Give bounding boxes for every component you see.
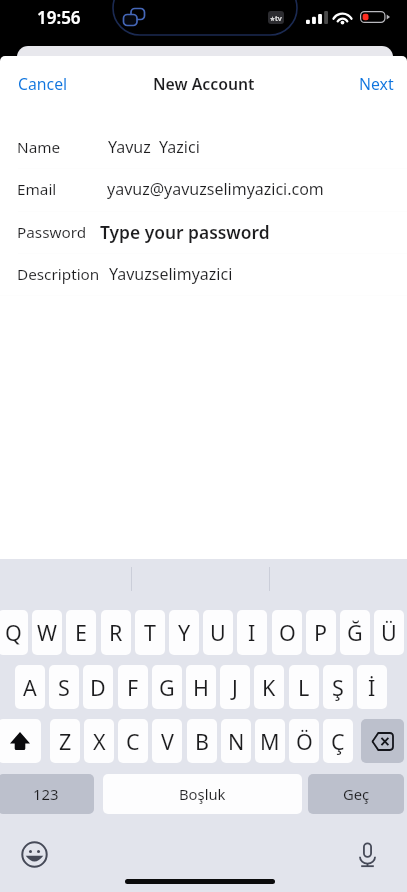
staticText: Yavuzselimyazici [109, 263, 233, 285]
button[interactable]: T [135, 610, 165, 655]
button[interactable]: A [15, 665, 45, 709]
button[interactable]: Description [0, 253, 407, 295]
staticText: G [159, 673, 175, 702]
staticText: Ö [296, 727, 313, 756]
button[interactable]: S [49, 665, 79, 709]
staticText: A [23, 673, 37, 702]
button[interactable]: İ [357, 665, 387, 709]
button[interactable]: Backspace [361, 719, 404, 763]
button[interactable]: Email [0, 168, 407, 210]
button[interactable]: Name [0, 126, 407, 168]
staticText: Name [17, 137, 61, 158]
staticText: E [75, 618, 87, 647]
staticText: J [232, 673, 238, 702]
button[interactable]: B [187, 719, 217, 763]
button[interactable]: J [220, 665, 250, 709]
button[interactable]: Y [169, 610, 199, 655]
staticText: Description [17, 264, 100, 285]
staticText: U [210, 618, 226, 647]
button[interactable]: E [66, 610, 96, 655]
staticText: Yavuz Yazici [108, 136, 200, 158]
staticText: L [298, 673, 310, 702]
staticText: Email [17, 179, 57, 200]
staticText: yavuz@yavuzselimyazici.com [107, 178, 324, 200]
button[interactable]: N [221, 719, 251, 763]
button[interactable]: V [152, 719, 182, 763]
button[interactable]: Ç [323, 719, 353, 763]
button[interactable]: H [186, 665, 216, 709]
staticText: F [127, 673, 139, 702]
button[interactable]: I [237, 610, 267, 655]
button[interactable]: D [83, 665, 113, 709]
staticText: Ç [331, 727, 345, 756]
button[interactable]: L [289, 665, 319, 709]
staticText: tv [270, 13, 282, 23]
staticText: Type your password [100, 220, 270, 244]
button[interactable]: Cancel [5, 67, 81, 101]
staticText: Boşluk [179, 784, 226, 804]
button[interactable]: X [84, 719, 114, 763]
staticText: Z [59, 727, 72, 756]
staticText: 123 [33, 784, 59, 804]
staticText: B [195, 727, 209, 756]
staticText: X [93, 727, 106, 756]
button[interactable]: P [306, 610, 336, 655]
staticText: P [314, 618, 328, 647]
staticText: Q [5, 618, 22, 647]
staticText: S [58, 673, 70, 702]
staticText: N [228, 727, 245, 756]
staticText: Ş [332, 673, 344, 702]
button[interactable]: C [118, 719, 148, 763]
staticText: Geç [343, 784, 370, 804]
button[interactable]: Ğ [340, 610, 370, 655]
button[interactable]: Dictation [357, 842, 378, 868]
button[interactable]: Shift [0, 719, 41, 763]
staticText: T [144, 618, 156, 647]
button[interactable]: O [272, 610, 302, 655]
button[interactable]: U [203, 610, 233, 655]
button[interactable]: W [32, 610, 62, 655]
button[interactable]: Emoji keyboard [21, 841, 48, 868]
staticText: D [90, 673, 106, 702]
button[interactable]: Z [50, 719, 80, 763]
button[interactable]: Q [0, 610, 28, 655]
staticText: V [161, 727, 174, 756]
staticText: Ğ [347, 618, 363, 647]
staticText: C [126, 727, 140, 756]
staticText: M [260, 727, 280, 756]
button[interactable]: R [101, 610, 131, 655]
staticText: R [109, 618, 123, 647]
button[interactable]: F [118, 665, 148, 709]
button[interactable]: G [152, 665, 182, 709]
staticText: Cancel [18, 73, 68, 95]
button[interactable]: M [255, 719, 285, 763]
staticText: H [193, 673, 209, 702]
staticText: Next [359, 73, 394, 95]
staticText: Y [178, 618, 191, 647]
staticText: K [262, 673, 276, 702]
button[interactable]: Password [0, 211, 407, 253]
staticText: W [37, 618, 57, 647]
staticText: Password [17, 222, 87, 243]
button[interactable]: K [254, 665, 284, 709]
button[interactable]: Ş [323, 665, 353, 709]
staticText: O [279, 618, 296, 647]
button[interactable]: Ü [374, 610, 404, 655]
staticText: I [248, 618, 256, 647]
button[interactable]: Boşluk [103, 774, 302, 814]
button[interactable]: 123 [0, 774, 94, 814]
staticText: 19:56 [37, 6, 81, 29]
button[interactable]: Ö [289, 719, 319, 763]
staticText: İ [368, 673, 376, 702]
button[interactable]: Geç [308, 774, 404, 814]
staticText: New Account [153, 73, 255, 95]
staticText: Ü [381, 618, 397, 647]
button[interactable]: Next [346, 67, 407, 101]
